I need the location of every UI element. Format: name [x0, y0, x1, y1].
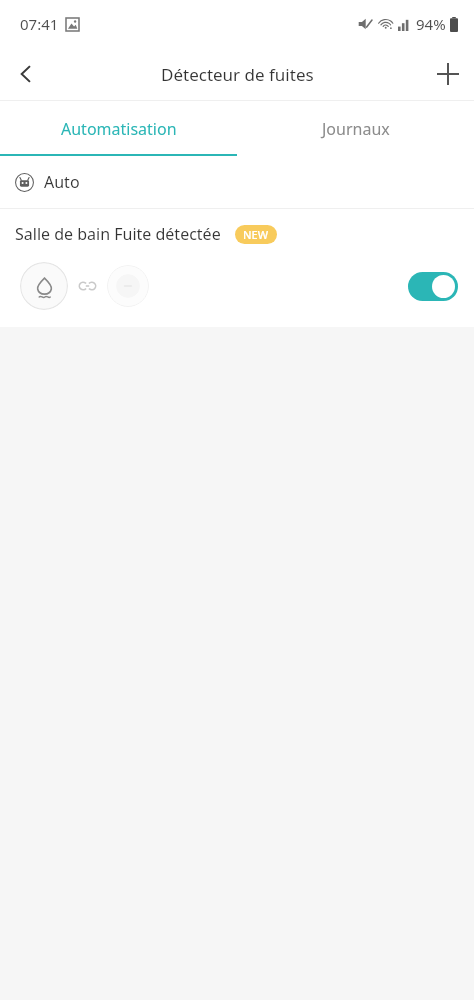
staticText: NEW: [243, 227, 269, 242]
staticText: Auto: [44, 171, 80, 193]
button[interactable]: Journaux: [237, 101, 474, 156]
button[interactable]: Automation enabled: [408, 272, 458, 301]
staticText: Journaux: [322, 118, 390, 140]
button[interactable]: Automatisation: [0, 101, 237, 156]
staticText: Automatisation: [61, 118, 177, 140]
staticText: Salle de bain Fuite détectée: [15, 223, 221, 245]
button[interactable]: Water leak sensor: [20, 262, 68, 310]
button[interactable]: Back: [0, 48, 52, 100]
button[interactable]: Add: [422, 48, 474, 100]
button[interactable]: Linked action: [107, 265, 149, 307]
button[interactable]: Auto: [0, 156, 474, 208]
staticText: Détecteur de fuites: [161, 63, 314, 86]
staticText: 94%: [416, 14, 446, 34]
staticText: 07:41: [20, 14, 59, 34]
